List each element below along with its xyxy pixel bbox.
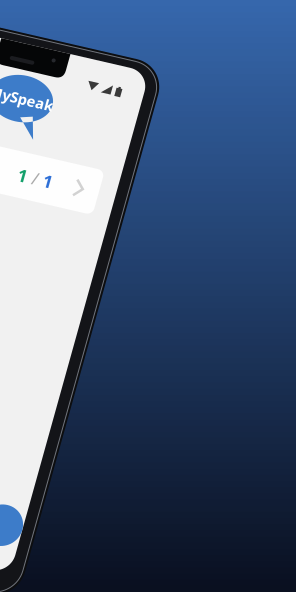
button[interactable]: 1 — [0, 123, 142, 169]
staticText: MySpeak — [9, 62, 75, 81]
